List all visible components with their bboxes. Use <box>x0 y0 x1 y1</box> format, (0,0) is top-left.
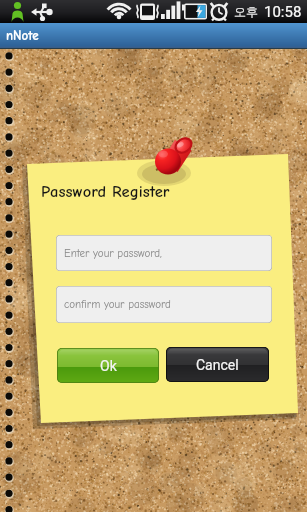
staticText: Password Register <box>41 182 170 201</box>
staticText: Enter your password, <box>64 247 162 260</box>
button[interactable]: confirm your password <box>56 286 272 323</box>
staticText: confirm your password <box>64 298 171 311</box>
button[interactable]: nNote <box>0 23 307 49</box>
staticText: nNote <box>6 28 39 43</box>
staticText: 오후 <box>234 4 258 19</box>
staticText: 10:58 <box>264 3 302 21</box>
button[interactable]: Cancel <box>166 347 269 382</box>
button[interactable]: Ok <box>57 348 159 383</box>
staticText: Cancel <box>196 357 239 373</box>
staticText: Ok <box>100 358 117 374</box>
button[interactable]: Enter your password, <box>56 235 272 271</box>
